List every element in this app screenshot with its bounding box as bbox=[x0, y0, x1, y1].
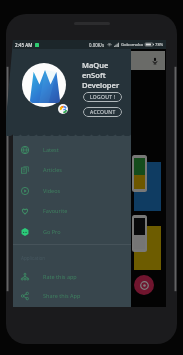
staticText: Articles bbox=[43, 166, 62, 173]
staticText: Share this App bbox=[43, 292, 81, 299]
staticText: Go Pro bbox=[43, 228, 61, 235]
staticText: 78% bbox=[155, 42, 164, 48]
button[interactable]: Go Pro bbox=[13, 222, 131, 241]
other: Voice search bbox=[151, 57, 159, 65]
staticText: 2:45 AM bbox=[15, 42, 33, 48]
button[interactable]: Videos bbox=[13, 181, 131, 200]
staticText: Developer bbox=[82, 80, 120, 90]
staticText: enSoft bbox=[82, 70, 106, 80]
staticText: MaQue bbox=[82, 60, 109, 70]
button[interactable]: Create bbox=[134, 275, 154, 295]
staticText: Latest bbox=[43, 146, 59, 153]
button[interactable]: Voice search bbox=[15, 51, 165, 70]
button[interactable]: ACCOUNT bbox=[83, 107, 122, 117]
staticText: Rate this app bbox=[43, 273, 77, 280]
staticText: ACCOUNT bbox=[90, 109, 116, 116]
button[interactable] bbox=[134, 162, 161, 211]
staticText: LOGOUT ! bbox=[90, 94, 116, 101]
staticText: Gobomoko bbox=[121, 42, 143, 48]
staticText: 0.00K/s bbox=[89, 42, 105, 48]
staticText: Videos bbox=[43, 187, 61, 194]
button[interactable] bbox=[134, 226, 161, 270]
button[interactable]: Rate this app bbox=[13, 267, 131, 286]
staticText: Application bbox=[21, 255, 46, 261]
button[interactable]: Latest bbox=[13, 140, 131, 159]
button[interactable]: Share this App bbox=[13, 286, 131, 305]
button[interactable]: LOGOUT ! bbox=[83, 92, 122, 102]
button[interactable]: Favourite bbox=[13, 201, 131, 220]
button[interactable]: Articles bbox=[13, 160, 131, 179]
staticText: Favourite bbox=[43, 207, 68, 214]
